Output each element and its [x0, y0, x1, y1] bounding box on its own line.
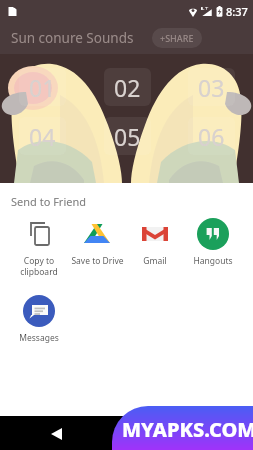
staticText: 01 [29, 72, 56, 103]
staticText: Messages [19, 332, 59, 344]
staticText: Hangouts [193, 255, 233, 267]
button[interactable]: Save to Drive [68, 218, 126, 267]
button[interactable]: Hangouts [184, 218, 242, 267]
button[interactable]: Messages [10, 295, 68, 344]
staticText: Save to Drive [71, 255, 124, 267]
staticText: 8:37 [226, 4, 248, 19]
button[interactable]: 05 [104, 117, 151, 155]
button[interactable]: 03 [188, 68, 235, 106]
button[interactable]: Gmail [126, 218, 184, 267]
staticText: 06 [198, 121, 225, 152]
button[interactable]: 06 [188, 117, 235, 155]
staticText: 05 [114, 121, 141, 152]
staticText: Send to Friend [11, 194, 87, 209]
staticText: Gmail [143, 255, 167, 267]
staticText: Sun conure Sounds [11, 29, 134, 47]
button[interactable]: 01 [19, 68, 66, 106]
staticText: +SHARE [160, 32, 194, 44]
button[interactable]: +SHARE [152, 28, 202, 48]
staticText: 03 [198, 72, 225, 103]
staticText: 02 [114, 72, 141, 103]
staticText: MYAPKS.COM [122, 416, 253, 443]
staticText: 04 [29, 121, 56, 152]
button[interactable]: 02 [104, 68, 151, 106]
button[interactable]: 04 [19, 117, 66, 155]
button[interactable]: Back [42, 419, 71, 448]
staticText: Copy to clipboard [20, 255, 58, 277]
button[interactable]: Copy to clipboard [10, 218, 68, 277]
